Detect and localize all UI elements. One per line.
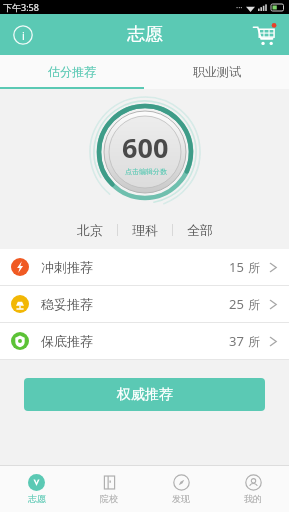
button[interactable]: 全部 [173, 217, 227, 243]
button[interactable]: 冲刺推荐 [0, 249, 289, 285]
staticText: 估分推荐 [48, 64, 96, 79]
button[interactable]: 院校 [73, 466, 145, 512]
button[interactable]: 北京 [63, 217, 117, 243]
staticText: 权威推荐 [117, 386, 173, 404]
staticText: 北京 [77, 222, 103, 238]
button[interactable]: 估分推荐 [0, 55, 144, 87]
staticText: 我的 [244, 493, 262, 504]
button[interactable]: 保底推荐 [0, 323, 289, 359]
staticText: ··· [236, 2, 243, 13]
button[interactable]: 职业测试 [144, 55, 289, 87]
button[interactable]: 权威推荐 [24, 378, 265, 411]
staticText: 600 [122, 129, 169, 166]
button[interactable]: 发现 [145, 466, 217, 512]
staticText: 点击编辑分数 [125, 167, 167, 176]
button[interactable]: Cart [249, 20, 279, 50]
button[interactable]: 理科 [118, 217, 172, 243]
button[interactable]: 稳妥推荐 [0, 286, 289, 322]
staticText: 全部 [187, 222, 213, 238]
staticText: 发现 [172, 493, 190, 504]
button[interactable]: 我的 [217, 466, 289, 512]
staticText: 15 [229, 258, 244, 276]
staticText: 职业测试 [193, 64, 241, 79]
staticText: 保底推荐 [41, 333, 93, 349]
staticText: 理科 [132, 222, 158, 238]
staticText: 37 [229, 332, 244, 350]
staticText: 所 [248, 297, 260, 312]
staticText: 志愿 [127, 23, 163, 46]
button[interactable]: 600 [89, 96, 201, 208]
staticText: 院校 [100, 493, 118, 504]
staticText: 所 [248, 260, 260, 275]
staticText: 稳妥推荐 [41, 296, 93, 312]
staticText: 冲刺推荐 [41, 259, 93, 275]
staticText: 25 [229, 295, 244, 313]
button[interactable]: Info [10, 22, 36, 48]
staticText: i [22, 28, 25, 43]
button[interactable]: 志愿 [0, 466, 73, 512]
staticText: 所 [248, 334, 260, 349]
staticText: 下午3:58 [3, 1, 39, 13]
staticText: 志愿 [28, 493, 46, 504]
